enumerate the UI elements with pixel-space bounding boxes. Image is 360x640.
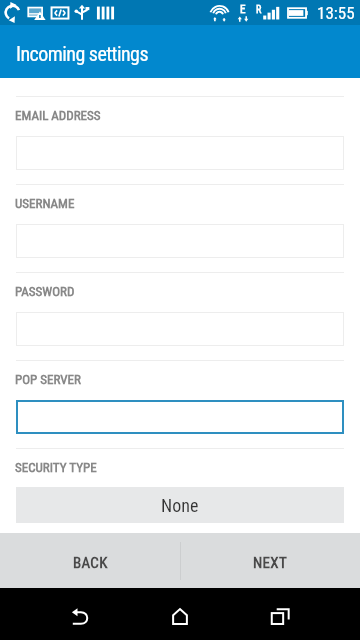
staticText: USERNAME xyxy=(15,196,75,211)
staticText: R xyxy=(256,4,262,16)
button[interactable]: Recent apps xyxy=(254,590,306,640)
staticText: SECURITY TYPE xyxy=(15,460,97,475)
staticText: E xyxy=(240,3,246,16)
button[interactable]: USERNAME xyxy=(16,224,344,258)
button[interactable]: None xyxy=(16,487,344,523)
staticText: EMAIL ADDRESS xyxy=(15,108,101,123)
staticText: None xyxy=(161,495,199,516)
staticText: PASSWORD xyxy=(15,284,75,299)
staticText: Incoming settings xyxy=(16,42,148,65)
button[interactable]: POP SERVER xyxy=(16,400,344,434)
button[interactable]: Home xyxy=(154,590,206,640)
staticText: BACK xyxy=(73,554,108,572)
button[interactable]: PASSWORD xyxy=(16,312,344,346)
staticText: POP SERVER xyxy=(15,372,81,387)
button[interactable]: EMAIL ADDRESS xyxy=(16,136,344,170)
staticText: 13:55 xyxy=(317,3,355,23)
button[interactable]: BACK xyxy=(0,533,180,588)
button[interactable]: Back xyxy=(54,590,106,640)
staticText: NEXT xyxy=(253,554,288,572)
button[interactable]: NEXT xyxy=(180,533,360,588)
